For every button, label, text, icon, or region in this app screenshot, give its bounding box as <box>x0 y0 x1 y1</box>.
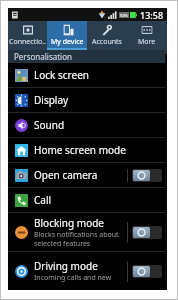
button[interactable]: Accounts <box>87 21 127 50</box>
staticText: Blocks notifications about selected feat… <box>34 230 119 248</box>
staticText: Personalisation <box>14 51 72 62</box>
staticText: Incoming calls and new <box>34 273 112 283</box>
staticText: 92% <box>120 13 128 18</box>
button[interactable]: Home screen mode <box>8 138 167 162</box>
button[interactable]: Open camera <box>8 163 167 187</box>
staticText: My device <box>51 37 84 47</box>
button[interactable]: My device <box>47 21 87 50</box>
staticText: Display <box>34 93 69 107</box>
button[interactable]: Lock screen <box>8 63 167 87</box>
staticText: Accounts <box>92 37 122 47</box>
staticText: 13:58 <box>140 9 164 21</box>
staticText: Sound <box>34 118 65 132</box>
button[interactable]: Call <box>8 188 167 212</box>
staticText: More <box>138 37 156 47</box>
staticText: Blocking mode <box>34 216 104 230</box>
staticText: Open camera <box>34 168 98 182</box>
button[interactable]: Toggle <box>132 226 162 239</box>
button[interactable]: Toggle <box>132 169 162 182</box>
button[interactable]: Toggle <box>132 265 162 278</box>
button[interactable]: Driving mode <box>8 252 167 290</box>
button[interactable]: Display <box>8 88 167 112</box>
button[interactable]: More <box>127 21 167 50</box>
button[interactable]: Blocking mode <box>8 213 167 251</box>
staticText: Call <box>34 193 52 207</box>
staticText: Driving mode <box>34 259 98 273</box>
staticText: Lock screen <box>34 68 90 82</box>
button[interactable]: Connectio.. <box>8 21 47 50</box>
button[interactable]: Sound <box>8 113 167 137</box>
staticText: Home screen mode <box>34 143 126 157</box>
staticText: Connectio.. <box>9 37 46 47</box>
